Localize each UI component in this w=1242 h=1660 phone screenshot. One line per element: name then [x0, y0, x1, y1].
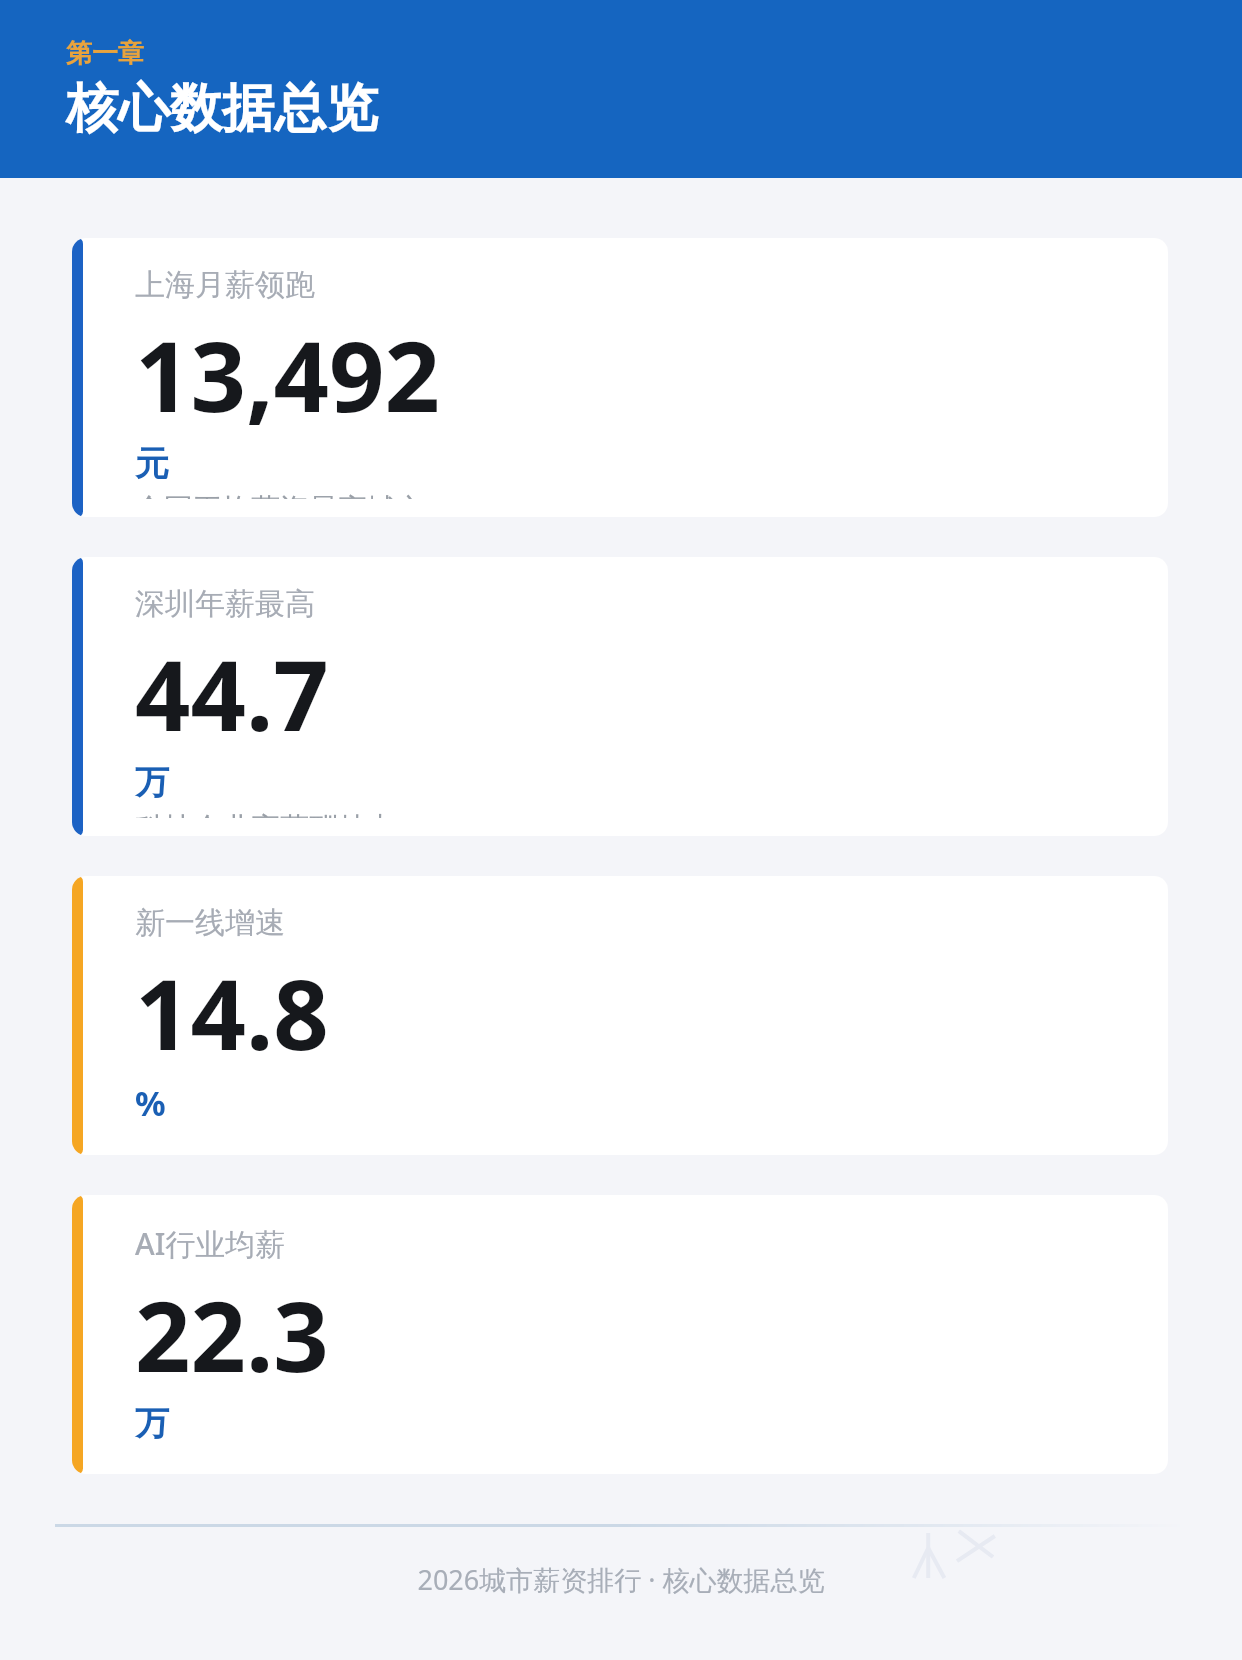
staticText: 核心数据总览: [66, 76, 378, 142]
staticText: 第一章: [66, 37, 144, 70]
staticText: 13,492: [135, 308, 441, 440]
staticText: 44.7: [135, 627, 329, 759]
staticText: 万: [135, 1402, 169, 1445]
staticText: 上海月薪领跑: [135, 266, 315, 304]
staticText: %: [135, 1080, 166, 1126]
staticText: 新一线增速: [135, 904, 285, 942]
staticText: 元: [135, 442, 169, 485]
button[interactable]: AI行业均薪: [72, 1195, 1168, 1474]
staticText: 22.3: [135, 1268, 329, 1400]
button[interactable]: 上海月薪领跑: [72, 238, 1168, 517]
staticText: 14.8: [135, 946, 329, 1078]
staticText: AI行业均薪: [135, 1223, 286, 1264]
button[interactable]: 深圳年薪最高: [72, 557, 1168, 836]
staticText: 深圳年薪最高: [135, 585, 315, 623]
staticText: 科技企业高薪酬特点: [135, 810, 396, 818]
button[interactable]: 新一线增速: [72, 876, 1168, 1155]
staticText: 2026城市薪资排行 · 核心数据总览: [0, 1561, 1242, 1598]
staticText: 万: [135, 761, 169, 804]
staticText: 全国平均薪资最高城市: [135, 491, 425, 499]
